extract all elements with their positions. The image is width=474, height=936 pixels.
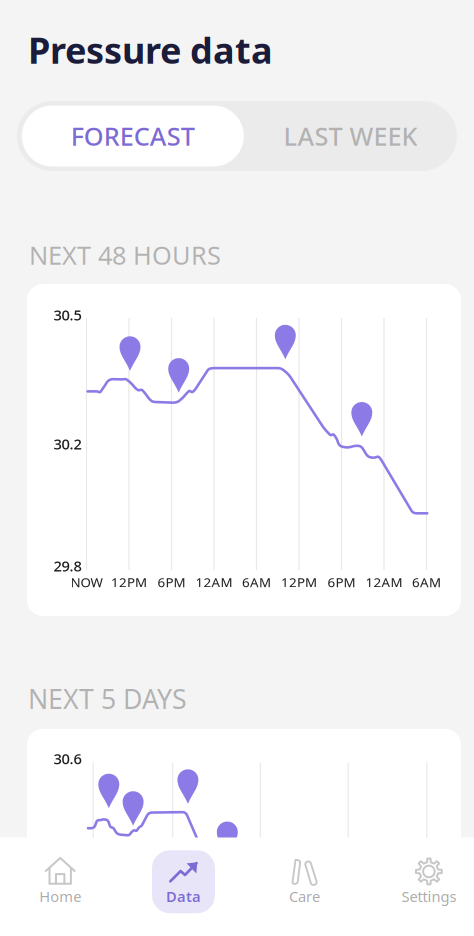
staticText: Care — [289, 886, 320, 906]
staticText: 12PM — [281, 573, 317, 591]
staticText: 6AM — [412, 573, 441, 591]
staticText: NEXT 5 DAYS — [28, 681, 187, 716]
staticText: Data — [166, 886, 201, 906]
staticText: 6AM — [242, 573, 271, 591]
button[interactable]: Data — [152, 837, 215, 909]
staticText: Home — [39, 886, 81, 906]
button[interactable]: Settings — [397, 837, 460, 909]
staticText: 12AM — [195, 573, 232, 591]
staticText: 30.5 — [53, 305, 81, 324]
staticText: 6PM — [327, 573, 355, 591]
staticText: NEXT 48 HOURS — [29, 238, 221, 272]
staticText: LAST WEEK — [283, 119, 417, 153]
staticText: 29.8 — [53, 556, 81, 575]
staticText: 6PM — [157, 573, 185, 591]
button[interactable]: Home — [29, 837, 92, 909]
staticText: 30.2 — [53, 434, 81, 453]
staticText: Pressure data — [28, 26, 273, 74]
staticText: 12AM — [365, 573, 402, 591]
staticText: FORECAST — [71, 119, 195, 153]
staticText: 12PM — [111, 573, 147, 591]
staticText: NOW — [70, 573, 102, 591]
button[interactable]: FORECAST — [22, 105, 244, 166]
staticText: Settings — [401, 886, 456, 906]
button[interactable]: LAST WEEK — [244, 105, 457, 166]
button[interactable]: Care — [273, 837, 336, 909]
staticText: 30.6 — [53, 749, 81, 768]
